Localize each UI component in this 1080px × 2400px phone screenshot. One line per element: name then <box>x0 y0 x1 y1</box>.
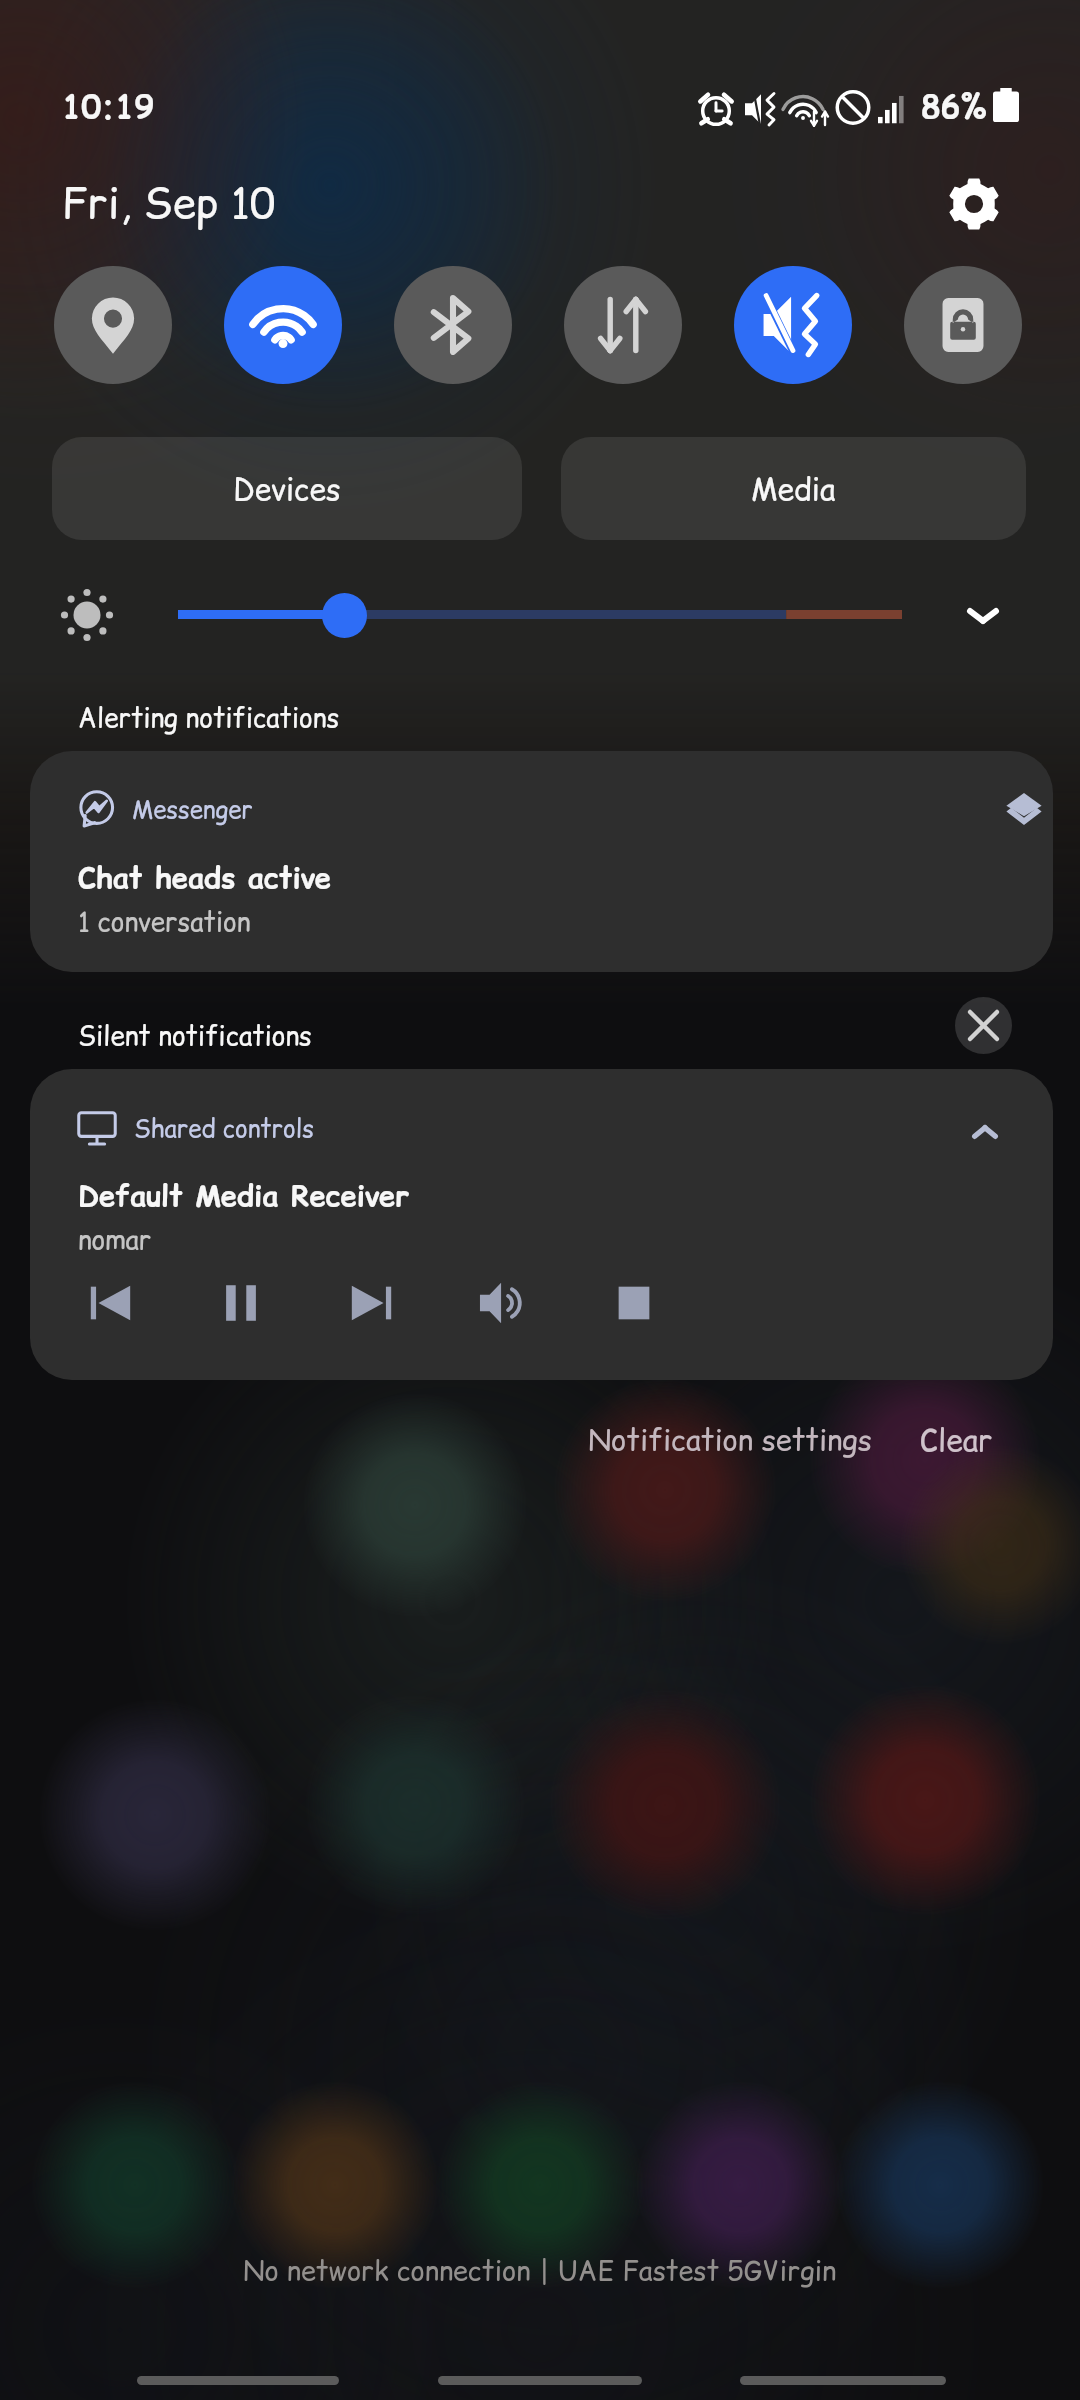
staticText: 10:19 <box>62 84 154 129</box>
staticText: nomar <box>78 1222 152 1258</box>
staticText: Shared controls <box>134 1112 314 1145</box>
button[interactable]: Previous <box>80 1273 140 1333</box>
staticText: Clear <box>920 1419 993 1461</box>
staticText: Media <box>751 468 836 510</box>
button[interactable]: Rotation lock <box>904 266 1022 384</box>
button[interactable]: Settings <box>938 168 1010 240</box>
button[interactable]: Messenger <box>30 751 1053 972</box>
button[interactable]: Volume <box>473 1273 533 1333</box>
staticText: 1 conversation <box>78 904 251 940</box>
button[interactable]: Mobile data <box>564 266 682 384</box>
button[interactable]: Shared controls <box>30 1069 1053 1380</box>
staticText: Notification settings <box>588 1419 872 1459</box>
button[interactable]: Notification settings <box>576 1409 884 1469</box>
staticText: Messenger <box>132 793 253 826</box>
button[interactable]: Collapse <box>950 1097 1020 1167</box>
staticText: Default Media Receiver <box>78 1175 410 1215</box>
button[interactable]: Devices <box>52 437 522 540</box>
button[interactable]: Media <box>561 437 1026 540</box>
staticText: No network connection | UAE Fastest 5GVi… <box>243 2252 837 2290</box>
staticText: Alerting notifications <box>78 700 340 736</box>
button[interactable]: Wi-Fi <box>224 266 342 384</box>
staticText: Fri, Sep 10 <box>62 174 276 233</box>
button[interactable]: Pause <box>211 1273 271 1333</box>
button[interactable]: Expand quick settings <box>947 580 1019 652</box>
button[interactable]: Bluetooth <box>394 266 512 384</box>
button[interactable]: Ring mode <box>734 266 852 384</box>
button[interactable]: Next <box>342 1273 402 1333</box>
button[interactable]: Clear <box>908 1409 1005 1471</box>
button[interactable]: Location <box>54 266 172 384</box>
staticText: Chat heads active <box>78 857 331 897</box>
staticText: Silent notifications <box>78 1018 312 1054</box>
staticText: Devices <box>233 468 341 510</box>
staticText: 86% <box>921 84 987 129</box>
button[interactable]: Clear all notifications <box>955 997 1012 1054</box>
button[interactable]: Stop <box>604 1273 664 1333</box>
